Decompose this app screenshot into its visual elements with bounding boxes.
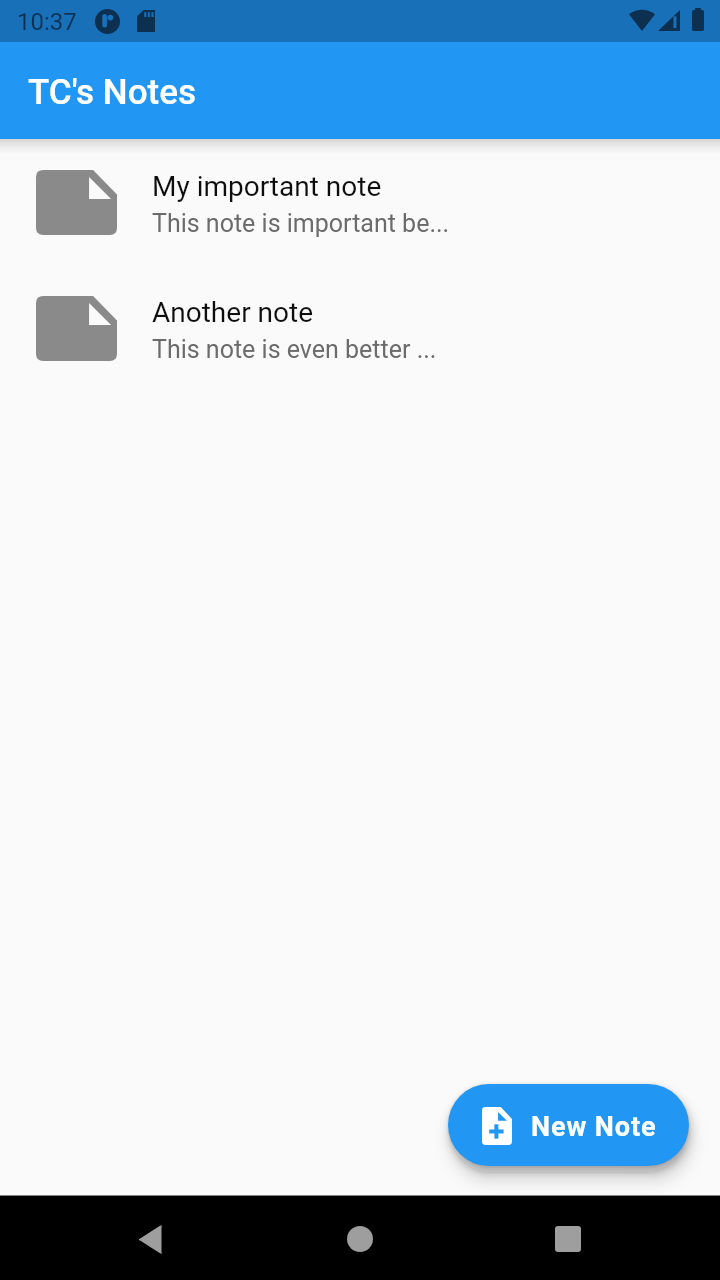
button[interactable]: Back [80,1197,222,1280]
button[interactable]: Home [289,1197,431,1280]
staticText: Another note [152,296,313,329]
staticText: New Note [531,1111,657,1143]
button[interactable]: Recent apps [497,1197,639,1280]
staticText: 10:37 [17,8,77,36]
button[interactable]: Another note [0,291,720,401]
staticText: This note is important be... [152,209,450,238]
staticText: TC's Notes [28,72,197,113]
button[interactable]: My important note [0,165,720,275]
button[interactable]: New Note [448,1084,689,1166]
staticText: This note is even better ... [152,335,437,364]
staticText: My important note [152,170,382,203]
